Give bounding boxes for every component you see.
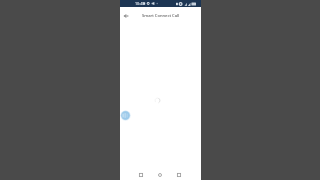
- button[interactable]: Back: [122, 12, 130, 20]
- button[interactable]: Recents: [174, 170, 184, 180]
- button[interactable]: Smart Connect assistant bubble: [120, 110, 131, 121]
- staticText: 10:45: [135, 1, 145, 6]
- staticText: Smart Connect Call: [142, 13, 180, 19]
- button[interactable]: Home: [155, 170, 165, 180]
- button[interactable]: Back: [136, 170, 146, 180]
